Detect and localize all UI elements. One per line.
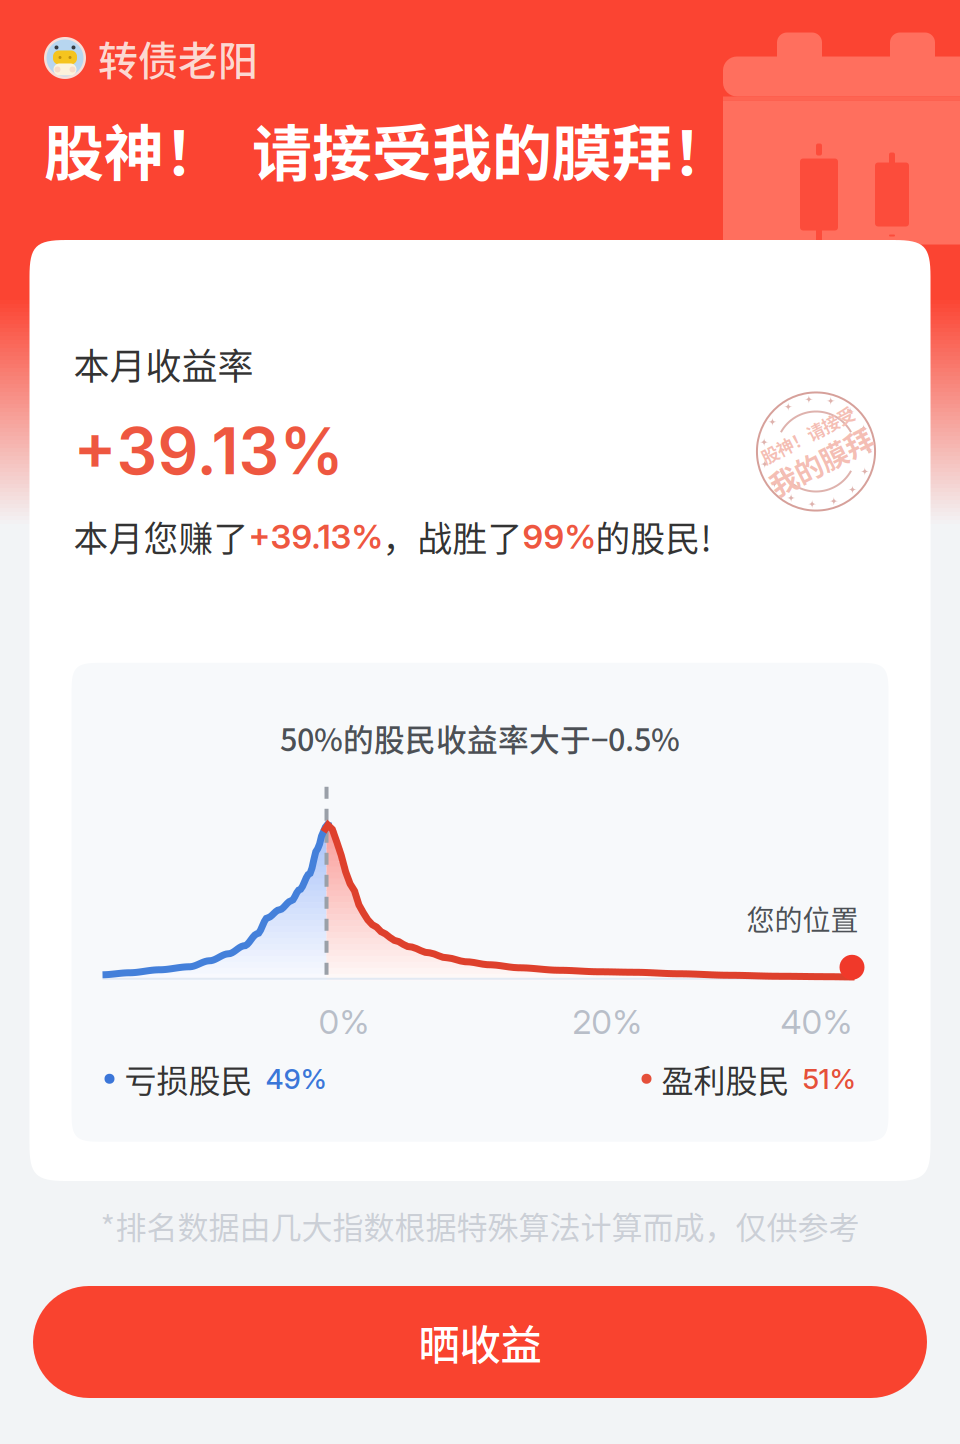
staticText: 50%的股民收益率大于−0.5% (280, 716, 680, 760)
staticText: 亏损股民 (124, 1056, 252, 1102)
staticText: 20% (572, 1002, 642, 1042)
staticText: 40% (780, 1002, 852, 1042)
button[interactable]: 晒收益 (33, 1286, 927, 1398)
staticText: 转债老阳 (98, 29, 258, 87)
staticText: 的股民! (595, 512, 711, 562)
staticText: ，战胜了 (382, 512, 522, 562)
staticText: 股神！请接受 (765, 420, 867, 445)
staticText: 您的位置 (746, 898, 858, 939)
staticText: 51% (802, 1062, 856, 1096)
staticText: 49% (265, 1062, 327, 1096)
staticText: +39.13% (248, 516, 382, 557)
staticText: 本月您赚了 (73, 512, 248, 562)
staticText: 晒收益 (418, 1312, 541, 1372)
staticText: 0% (318, 1002, 369, 1042)
staticText: 我的膜拜 (760, 442, 872, 483)
staticText: +39.13% (73, 412, 343, 489)
staticText: *排名数据由几大指数根据特殊算法计算而成，仅供参考 (100, 1203, 859, 1248)
staticText: 股神！ 请接受我的膜拜！ (44, 106, 732, 193)
staticText: 盈利股民 (661, 1056, 789, 1102)
staticText: 99% (522, 516, 595, 557)
staticText: 本月收益率 (73, 338, 253, 390)
